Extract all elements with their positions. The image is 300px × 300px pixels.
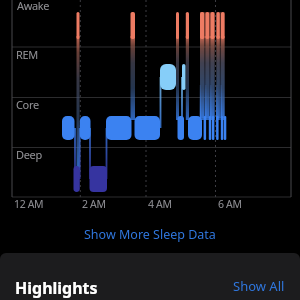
staticText: Awake bbox=[17, 0, 50, 13]
staticText: REM bbox=[16, 47, 38, 62]
staticText: 12 AM bbox=[14, 197, 44, 211]
staticText: Highlights bbox=[15, 277, 98, 299]
staticText: 6 AM bbox=[218, 197, 242, 211]
staticText: 2 AM bbox=[82, 197, 106, 211]
staticText: Show All bbox=[233, 277, 285, 295]
staticText: Deep bbox=[16, 147, 42, 162]
staticText: 4 AM bbox=[148, 197, 172, 211]
button[interactable]: Show More Sleep Data bbox=[0, 224, 300, 244]
staticText: Show More Sleep Data bbox=[84, 226, 216, 243]
staticText: Core bbox=[16, 97, 39, 112]
button[interactable]: Show All bbox=[233, 277, 285, 295]
